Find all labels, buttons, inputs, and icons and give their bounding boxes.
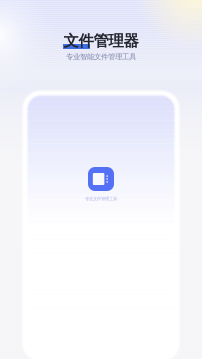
staticText: 文件管理器 bbox=[63, 31, 138, 51]
staticText: 专业文件管理工具 bbox=[85, 196, 117, 201]
staticText: 专业智能文件管理工具 bbox=[66, 52, 136, 61]
